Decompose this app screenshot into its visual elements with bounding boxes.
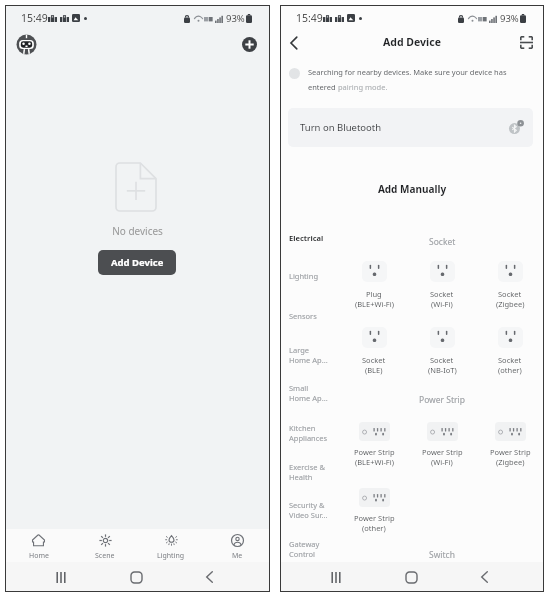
staticText: Socket [430, 355, 454, 365]
staticText: Socket [429, 236, 456, 248]
staticText: Home [29, 551, 49, 561]
button[interactable]: Scene [72, 529, 138, 562]
staticText: Security & [289, 500, 325, 510]
button[interactable]: Socket [341, 327, 407, 375]
staticText: Appliances [289, 433, 328, 443]
staticText: Searching for nearby devices. Make sure … [308, 67, 507, 77]
button[interactable]: Power Strip [409, 422, 475, 467]
button[interactable]: Plug [341, 261, 407, 309]
staticText: Socket [430, 289, 454, 299]
staticText: 15:49 [21, 11, 48, 25]
button[interactable]: Security & [289, 500, 343, 520]
staticText: (BLE) [365, 365, 383, 375]
button[interactable]: Me [204, 529, 270, 562]
staticText: Lighting [289, 271, 319, 281]
staticText: (BLE+Wi-Fi) [355, 299, 394, 309]
staticText: (Zigbee) [496, 299, 525, 309]
button[interactable]: Add device [237, 32, 261, 56]
button[interactable]: Sensors [289, 311, 343, 321]
button[interactable]: Socket [477, 261, 543, 309]
button[interactable]: Back [195, 563, 223, 591]
button[interactable]: Home [5, 529, 72, 562]
staticText: Power Strip [422, 447, 463, 457]
staticText: (other) [362, 523, 386, 533]
button[interactable]: Socket [477, 327, 543, 375]
staticText: 93% [500, 12, 519, 25]
button[interactable]: Small [289, 383, 343, 403]
staticText: Power Strip [354, 447, 395, 457]
staticText: entered [308, 82, 338, 92]
staticText: Switch [429, 549, 455, 561]
staticText: No devices [5, 224, 270, 238]
staticText: Add Device [111, 256, 164, 269]
staticText: Home Ap... [289, 393, 328, 403]
staticText: Turn on Bluetooth [300, 121, 382, 134]
button[interactable]: Lighting [138, 529, 204, 562]
staticText: Kitchen [289, 423, 316, 433]
staticText: Control [289, 549, 316, 559]
staticText: Electrical [289, 233, 324, 243]
staticText: Socket [362, 355, 386, 365]
button[interactable]: Electrical [289, 233, 343, 243]
staticText: Power Strip [419, 394, 465, 406]
staticText: Add Device [280, 35, 544, 49]
staticText: Small [289, 383, 309, 393]
staticText: Home Ap... [289, 355, 328, 365]
staticText: Socket [498, 289, 522, 299]
button[interactable]: Socket [409, 261, 475, 309]
button[interactable]: Scan QR code [514, 30, 538, 54]
button[interactable]: Back [470, 563, 498, 591]
staticText: Power Strip [490, 447, 531, 457]
button[interactable]: Power Strip [477, 422, 543, 467]
staticText: Large [289, 345, 310, 355]
button[interactable]: Gateway [289, 539, 343, 559]
button[interactable]: Turn on Bluetooth [288, 108, 533, 147]
staticText: (Wi-Fi) [431, 457, 453, 467]
staticText: Exercise & [289, 462, 325, 472]
button[interactable]: Exercise & [289, 462, 343, 482]
button[interactable]: Recents [322, 563, 350, 591]
button[interactable]: Power Strip [341, 488, 407, 533]
staticText: Power Strip [354, 513, 395, 523]
staticText: Gateway [289, 539, 320, 549]
button[interactable]: Home [122, 563, 150, 591]
staticText: (NB-IoT) [428, 365, 457, 375]
staticText: 93% [226, 12, 245, 25]
staticText: Scene [95, 551, 115, 561]
staticText: 15:49 [296, 11, 323, 25]
staticText: Socket [498, 355, 522, 365]
staticText: Health [289, 472, 313, 482]
button[interactable]: Recents [47, 563, 75, 591]
staticText: Video Sur... [289, 510, 328, 520]
button[interactable]: Back [281, 30, 307, 56]
staticText: Add Manually [280, 182, 544, 196]
staticText: (other) [498, 365, 522, 375]
staticText: (Wi-Fi) [431, 299, 453, 309]
button[interactable]: Large [289, 345, 343, 365]
staticText: (BLE+Wi-Fi) [355, 457, 394, 467]
staticText: Me [232, 551, 243, 561]
button[interactable]: Home [397, 563, 425, 591]
button[interactable]: Assistant [13, 31, 39, 57]
button[interactable]: Kitchen [289, 423, 343, 443]
staticText: Plug [366, 289, 382, 299]
button[interactable]: Add Device [98, 250, 176, 275]
staticText: Lighting [157, 551, 185, 561]
staticText: (Zigbee) [496, 457, 525, 467]
staticText: pairing mode. [338, 82, 388, 92]
button[interactable]: Socket [409, 327, 475, 375]
staticText: Sensors [289, 311, 317, 321]
button[interactable]: Power Strip [341, 422, 407, 467]
button[interactable]: Lighting [289, 271, 343, 281]
